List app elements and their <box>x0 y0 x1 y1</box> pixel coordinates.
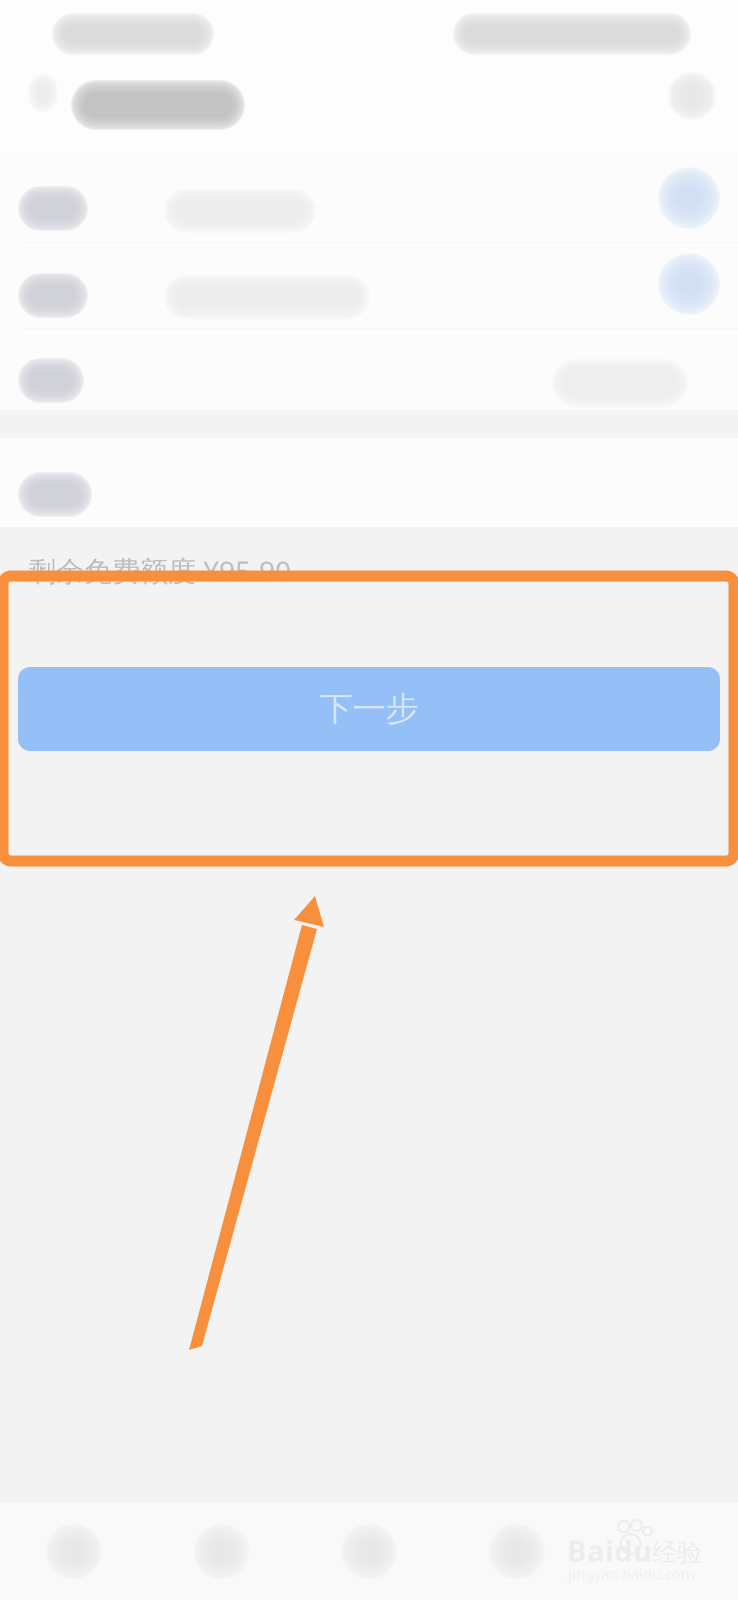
staticText: 下一步 <box>319 688 418 729</box>
button[interactable]: 下一步 <box>18 667 720 751</box>
staticText: 经验 <box>652 1537 702 1568</box>
button[interactable]: Tab <box>590 1503 738 1600</box>
button[interactable]: Customer service <box>655 59 729 133</box>
staticText: 剩余免费额度 ¥95.90 <box>28 552 291 589</box>
button[interactable]: Tab <box>0 1503 148 1600</box>
button[interactable]: Tab <box>443 1503 590 1600</box>
button[interactable]: Choose amount <box>650 245 728 323</box>
button[interactable]: Back <box>6 56 80 130</box>
staticText: Baidu <box>567 1531 652 1570</box>
button[interactable]: Tab <box>148 1503 295 1600</box>
button[interactable]: Choose contact <box>650 159 728 237</box>
button[interactable]: Tab <box>295 1503 443 1600</box>
